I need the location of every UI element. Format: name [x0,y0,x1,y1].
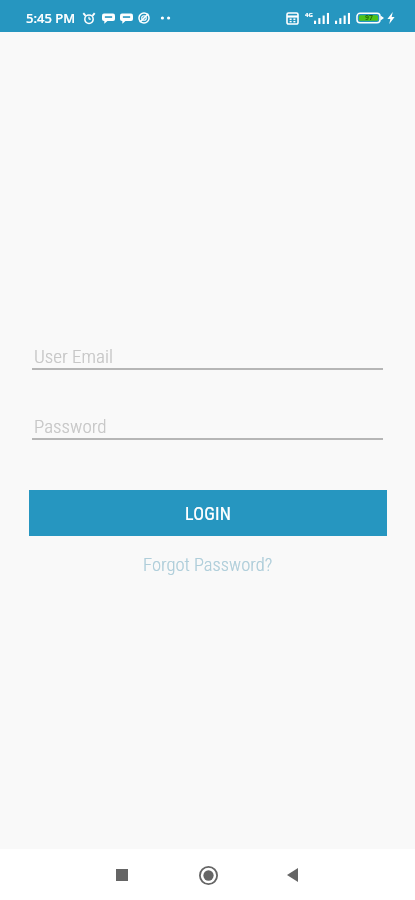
button[interactable]: Forgot Password? [135,551,281,579]
staticText: 5:45 PM [26,9,76,27]
button[interactable]: Home [189,856,227,894]
staticText: 4G [305,11,313,19]
staticText: Forgot Password? [143,554,273,576]
button[interactable]: Back [274,849,310,900]
button[interactable]: Recent apps [104,849,140,900]
staticText: User Email [34,345,113,367]
staticText: LOGIN [185,503,232,524]
button[interactable]: LOGIN [29,490,387,536]
staticText: Password [34,415,107,437]
staticText: 97 [365,13,374,23]
